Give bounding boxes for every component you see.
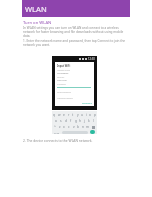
staticText: CONNECT xyxy=(82,102,92,105)
button[interactable]: WLAN xyxy=(22,0,130,17)
staticText: y xyxy=(77,113,79,117)
staticText: Show password xyxy=(57,91,71,94)
staticText: In WLAN settings you can turn on WLAN an… xyxy=(23,26,130,38)
staticText: Turn on WLAN xyxy=(23,20,52,26)
staticText: z xyxy=(59,125,61,129)
staticText: c xyxy=(68,125,70,129)
staticText: n xyxy=(82,125,84,129)
staticText: i xyxy=(86,113,87,117)
staticText: 2. The device connects to the WLAN netwo… xyxy=(23,138,93,142)
staticText: x xyxy=(63,125,65,129)
staticText: h xyxy=(79,119,81,123)
staticText: e xyxy=(63,113,65,117)
staticText: Network name xyxy=(57,69,71,72)
staticText: 1. Enter the network name and password, … xyxy=(23,39,128,47)
staticText: WLAN xyxy=(25,4,47,14)
staticText: Security xyxy=(57,76,65,79)
staticText: p xyxy=(94,113,96,117)
staticText: l xyxy=(93,119,94,123)
staticText: v xyxy=(73,125,75,129)
staticText: w xyxy=(58,113,61,117)
staticText: Advanced options xyxy=(57,97,73,100)
staticText: Input WiFi xyxy=(57,64,71,68)
staticText: f xyxy=(70,119,72,123)
staticText: ^ xyxy=(54,125,56,129)
staticText: 12:30 xyxy=(88,57,95,61)
staticText: s xyxy=(60,119,62,123)
staticText: q xyxy=(53,113,55,117)
staticText: o xyxy=(89,113,91,117)
staticText: a xyxy=(55,119,57,123)
staticText: MyNetwork xyxy=(57,72,69,75)
staticText: k xyxy=(88,119,90,123)
staticText: r xyxy=(68,113,70,117)
staticText: t xyxy=(72,113,74,117)
staticText: WPA2 PSK xyxy=(57,79,67,82)
staticText: ?123 xyxy=(54,131,60,134)
staticText: Password xyxy=(57,83,66,86)
staticText: b xyxy=(77,125,79,129)
staticText: u xyxy=(81,113,83,117)
staticText: d xyxy=(65,119,67,123)
staticText: j xyxy=(84,119,85,123)
staticText: m xyxy=(86,125,89,129)
staticText: g xyxy=(75,119,77,123)
